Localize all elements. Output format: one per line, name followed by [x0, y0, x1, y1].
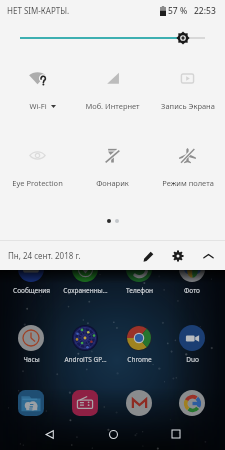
staticText: Фото [184, 286, 200, 295]
button[interactable]: Settings [167, 245, 189, 267]
button[interactable] [112, 390, 166, 416]
button[interactable]: Edit [137, 245, 159, 267]
staticText: Пн, 24 сент. 2018 г. [8, 250, 81, 261]
staticText: 22:53 [194, 5, 216, 17]
button[interactable]: AndroiTS GP… [58, 325, 112, 364]
staticText: Wi-Fi [29, 101, 47, 111]
staticText: 57 % [168, 5, 188, 17]
button[interactable]: Сохраненны… [58, 256, 112, 295]
staticText: Сохраненны… [63, 286, 108, 295]
button[interactable]: Recents [161, 419, 191, 449]
button[interactable]: Режим полета [150, 144, 225, 188]
button[interactable]: Сообщения [4, 256, 58, 295]
staticText: AndroiTS GP… [64, 355, 107, 364]
staticText: Фонарик [96, 178, 129, 188]
button[interactable]: Home [98, 419, 128, 449]
staticText: НЕТ SIM-КАРТЫ. [7, 5, 70, 16]
button[interactable]: Chrome [112, 325, 166, 364]
button[interactable]: Wi-Fi [0, 67, 75, 111]
button[interactable]: Фото [165, 256, 219, 295]
button[interactable]: Запись Экрана [150, 67, 225, 111]
button[interactable]: Моб. Интернет [75, 67, 150, 111]
button[interactable] [165, 390, 219, 416]
staticText: Eye Protection [12, 178, 63, 188]
staticText: Режим полета [162, 178, 214, 188]
button[interactable]: Часы [4, 325, 58, 364]
staticText: Duo [186, 355, 199, 364]
staticText: Моб. Интернет [85, 101, 140, 111]
button[interactable] [4, 390, 58, 416]
staticText: Запись Экрана [161, 101, 215, 111]
button[interactable]: Collapse [197, 245, 219, 267]
staticText: Телефон [126, 286, 153, 295]
button[interactable]: Фонарик [75, 144, 150, 188]
button[interactable]: Eye Protection [0, 144, 75, 188]
button[interactable]: Brightness [0, 27, 225, 49]
staticText: Часы [23, 355, 40, 364]
staticText: Сообщения [13, 286, 50, 295]
button[interactable] [58, 390, 112, 416]
staticText: Chrome [127, 355, 152, 364]
button[interactable]: Back [34, 419, 64, 449]
button[interactable]: Duo [165, 325, 219, 364]
button[interactable]: Телефон [112, 256, 166, 295]
